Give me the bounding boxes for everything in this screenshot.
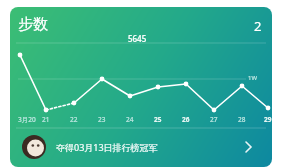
button[interactable] [10, 7, 272, 167]
button[interactable] [10, 7, 272, 167]
